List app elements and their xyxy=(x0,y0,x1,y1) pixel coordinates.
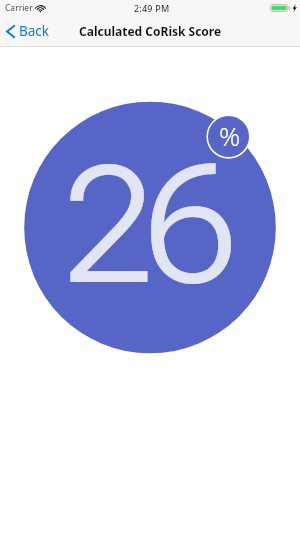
staticText: 2:49 PM xyxy=(134,2,170,14)
staticText: Carrier xyxy=(5,2,33,14)
button[interactable]: Back xyxy=(0,19,56,43)
staticText: 26 xyxy=(62,131,228,322)
staticText: % xyxy=(219,118,241,153)
staticText: Back xyxy=(19,22,50,40)
staticText: Calculated CoRisk Score xyxy=(79,23,222,39)
